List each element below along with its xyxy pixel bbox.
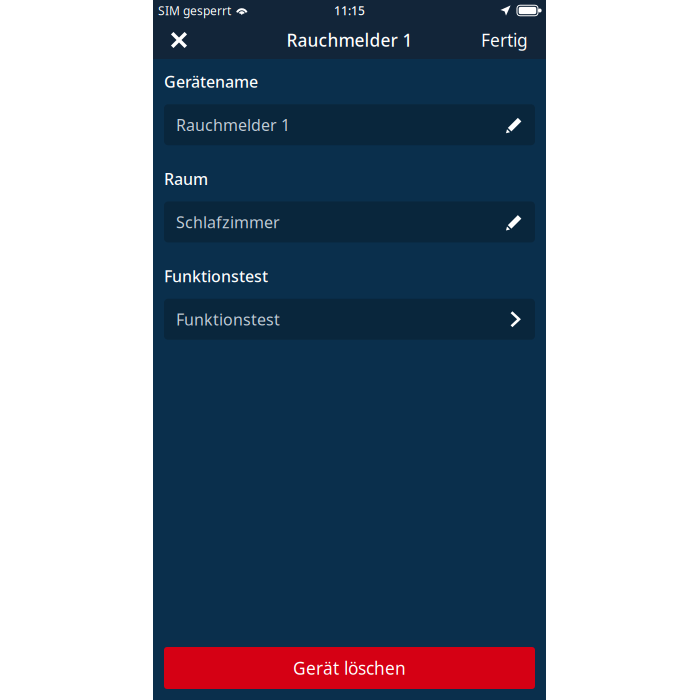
button[interactable]: Rauchmelder 1 (164, 104, 535, 145)
staticText: Rauchmelder 1 (286, 28, 412, 51)
staticText: Funktionstest (164, 265, 268, 287)
button[interactable]: Funktionstest (164, 299, 535, 340)
staticText: 11:15 (334, 2, 365, 18)
staticText: Schlafzimmer (176, 211, 280, 233)
staticText: Raum (164, 168, 208, 189)
staticText: SIM gesperrt (158, 2, 231, 18)
button[interactable]: Fertig (467, 20, 546, 59)
staticText: Funktionstest (176, 309, 280, 330)
staticText: Gerät löschen (293, 656, 406, 679)
button[interactable]: Gerät löschen (164, 647, 535, 689)
button[interactable]: Schlafzimmer (164, 201, 535, 242)
staticText: Gerätename (164, 71, 258, 92)
staticText: Fertig (481, 28, 528, 51)
button[interactable]: Schließen (153, 22, 201, 58)
staticText: Rauchmelder 1 (176, 114, 290, 135)
